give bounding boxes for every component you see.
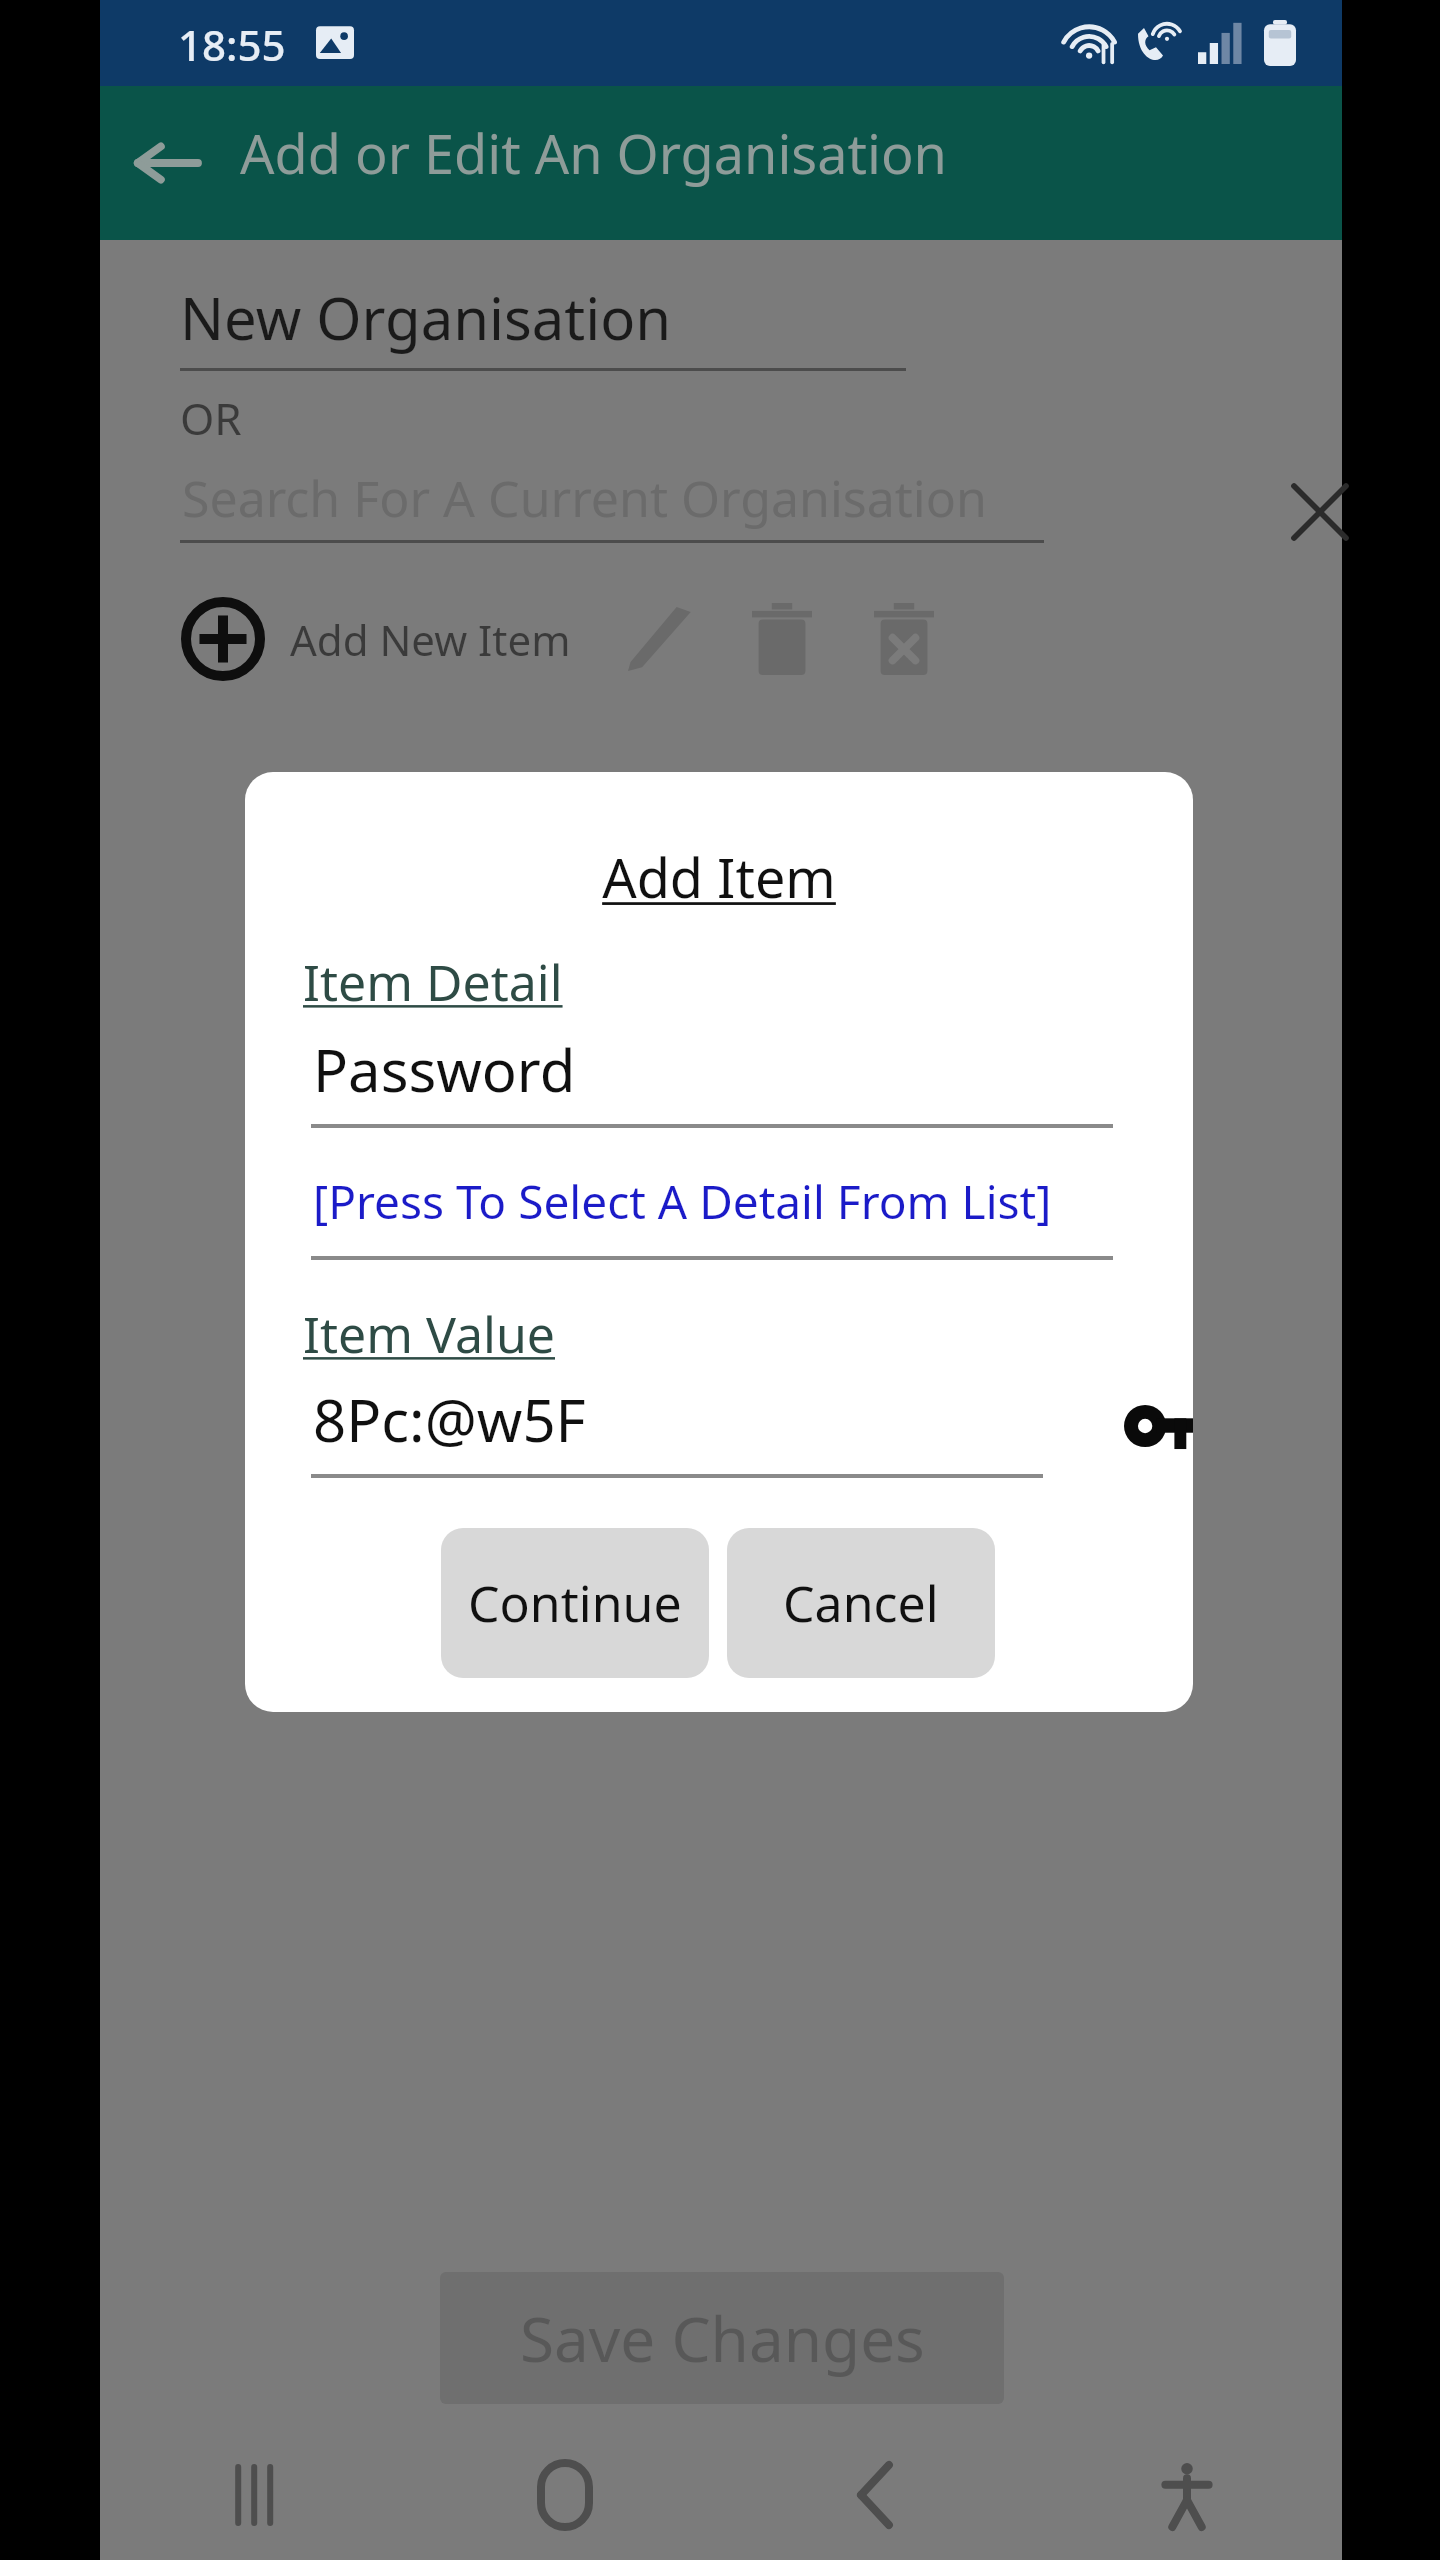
button[interactable]: Back <box>720 2430 1031 2560</box>
button[interactable]: Continue <box>441 1528 709 1678</box>
staticText: Search For A Current Organisation <box>182 464 987 532</box>
staticText: Continue <box>468 1569 682 1637</box>
staticText: Add Item <box>245 840 1193 914</box>
staticText: New Organisation <box>180 278 672 357</box>
staticText: 8Pc:@w5F <box>313 1380 586 1459</box>
button[interactable]: Edit item <box>611 590 709 688</box>
staticText: Cancel <box>783 1569 939 1637</box>
button[interactable]: Home <box>410 2430 720 2560</box>
button[interactable]: [Press To Select A Detail From List] <box>311 1154 1113 1260</box>
staticText: [Press To Select A Detail From List] <box>313 1170 1052 1233</box>
staticText: Save Changes <box>520 2296 925 2380</box>
staticText: Add or Edit An Organisation <box>240 116 947 190</box>
staticText: Password <box>313 1030 576 1109</box>
staticText: 18:55 <box>178 16 286 73</box>
staticText: Item Value <box>303 1300 555 1368</box>
button[interactable]: Delete item <box>733 590 831 688</box>
staticText: Item Detail <box>303 948 563 1016</box>
staticText: OR <box>180 388 242 448</box>
button[interactable]: Delete all items <box>855 590 953 688</box>
button[interactable]: Cancel <box>727 1528 995 1678</box>
button[interactable]: Recent apps <box>100 2430 410 2560</box>
button[interactable]: Generate password <box>1103 1370 1193 1482</box>
button[interactable]: Add new item <box>170 586 276 692</box>
button[interactable]: Accessibility <box>1031 2430 1342 2560</box>
button[interactable]: Save Changes <box>440 2272 1004 2404</box>
button[interactable]: Back <box>122 119 210 207</box>
staticText: Add New Item <box>290 611 571 668</box>
button[interactable]: Clear search <box>1264 456 1376 568</box>
